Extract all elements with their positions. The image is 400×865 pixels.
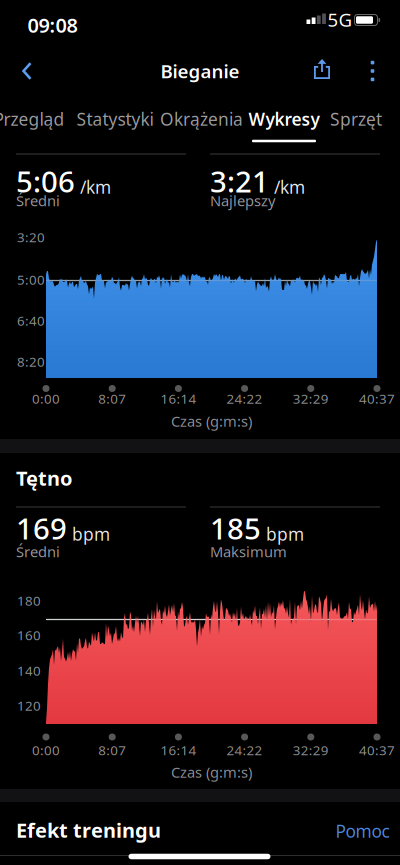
staticText: Najlepszy <box>210 191 275 210</box>
staticText: 3:21 <box>210 161 269 200</box>
staticText: 3:20 <box>17 228 45 246</box>
staticText: Tętno <box>16 465 73 491</box>
staticText: 8:07 <box>98 741 126 759</box>
staticText: Przegląd <box>0 107 64 130</box>
staticText: 169 <box>16 508 67 547</box>
staticText: 24:22 <box>227 741 263 759</box>
staticText: 185 <box>210 508 261 547</box>
staticText: Sprzęt <box>330 107 382 130</box>
staticText: 16:14 <box>160 390 196 407</box>
staticText: 140 <box>17 662 41 679</box>
staticText: Bieganie <box>160 59 239 83</box>
staticText: 120 <box>17 697 41 714</box>
staticText: 32:29 <box>293 390 329 407</box>
staticText: /km <box>274 175 305 198</box>
staticText: Czas (g:m:s) <box>171 411 252 431</box>
staticText: 40:37 <box>359 390 395 407</box>
staticText: Wykresy <box>248 107 319 130</box>
staticText: /km <box>80 175 111 198</box>
staticText: 32:29 <box>293 741 329 759</box>
button[interactable]: Sprzęt <box>330 107 382 130</box>
staticText: 0:00 <box>32 390 60 407</box>
staticText: Efekt treningu <box>16 817 161 843</box>
button[interactable]: Share <box>311 59 333 81</box>
staticText: Średni <box>16 542 60 561</box>
staticText: 6:40 <box>17 312 45 329</box>
staticText: 16:14 <box>160 741 196 759</box>
staticText: bpm <box>266 522 304 545</box>
button[interactable]: Pomoc <box>335 819 389 842</box>
staticText: 8:20 <box>17 353 45 370</box>
button[interactable]: Statystyki <box>76 107 153 130</box>
staticText: 09:08 <box>27 12 77 38</box>
staticText: 24:22 <box>227 390 263 407</box>
staticText: 8:07 <box>98 390 126 407</box>
button[interactable]: Przegląd <box>0 107 64 130</box>
staticText: Czas (g:m:s) <box>171 762 252 782</box>
button[interactable]: Back <box>22 62 32 80</box>
button[interactable]: Okrążenia <box>160 107 243 130</box>
staticText: 160 <box>17 626 41 644</box>
staticText: 0:00 <box>32 741 60 759</box>
staticText: 40:37 <box>359 741 395 759</box>
staticText: Pomoc <box>335 819 389 842</box>
staticText: 180 <box>17 592 41 609</box>
staticText: Okrążenia <box>160 107 243 130</box>
staticText: bpm <box>72 522 110 545</box>
staticText: Średni <box>16 191 60 210</box>
staticText: 5:06 <box>16 161 75 200</box>
button[interactable]: Wykresy <box>248 107 319 130</box>
staticText: Statystyki <box>76 107 153 130</box>
staticText: Maksimum <box>210 542 287 561</box>
staticText: 5:00 <box>17 271 45 288</box>
staticText: 5G <box>327 7 352 32</box>
button[interactable]: More <box>365 59 379 83</box>
